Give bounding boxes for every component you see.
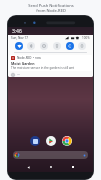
staticText: 100% [82, 36, 90, 40]
staticText: Sun, Nov 17 [11, 36, 28, 40]
staticText: Send Push Notifications [28, 3, 74, 8]
staticText: 3:46 [12, 28, 22, 35]
staticText: The moisture sensor in the garden is sti… [11, 66, 75, 70]
button[interactable]: Node-RED [9, 55, 92, 71]
button[interactable]: Play Store [46, 136, 56, 146]
button[interactable]: Messages [30, 136, 40, 146]
staticText: Moist Garden [11, 61, 35, 66]
button[interactable]: Back [25, 164, 31, 170]
staticText: Node-RED [17, 56, 32, 60]
button[interactable]: Auto rotate [66, 42, 74, 50]
staticText: • now [33, 56, 41, 60]
button[interactable]: Bluetooth [27, 42, 35, 50]
button[interactable]: Recent apps [70, 164, 76, 170]
button[interactable]: Chrome [62, 136, 72, 146]
button[interactable]: Do not disturb [40, 42, 48, 50]
button[interactable]: Wi-Fi [15, 42, 23, 50]
staticText: from Node-RED [36, 8, 66, 13]
button[interactable]: Flashlight [53, 42, 61, 50]
button[interactable]: Home [48, 164, 54, 170]
button[interactable]: Battery saver [78, 42, 86, 50]
button[interactable]: Search [13, 151, 88, 159]
button[interactable]: Settings [11, 73, 15, 77]
